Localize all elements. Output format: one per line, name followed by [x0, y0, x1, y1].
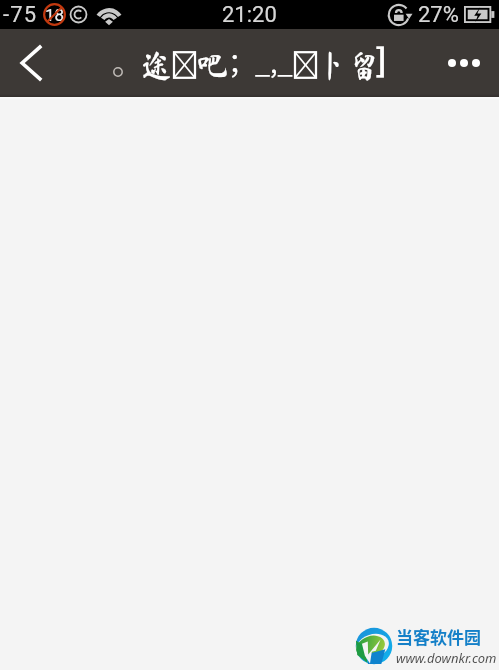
button[interactable]: Back [0, 32, 62, 94]
staticText: www.downkr.com [396, 649, 497, 667]
staticText: 当客软件园 [396, 624, 481, 649]
button[interactable]: More options [437, 32, 499, 94]
staticText: 途 [141, 50, 172, 81]
staticText: _,_ [255, 42, 293, 81]
staticText: ] [375, 35, 388, 81]
staticText: 27% [418, 2, 459, 28]
staticText: 吧 [197, 50, 228, 81]
staticText: 卜留 [318, 50, 380, 81]
staticText: 21:20 [222, 2, 277, 28]
staticText: -75 [3, 2, 38, 28]
staticText: ； [228, 42, 255, 81]
staticText: 18 [45, 5, 65, 25]
